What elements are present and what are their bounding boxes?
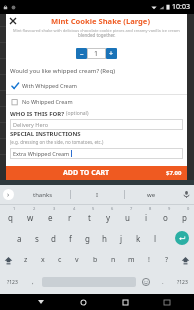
staticText: $7.00 xyxy=(166,169,182,177)
button[interactable]: ! xyxy=(140,249,158,271)
button[interactable]: Home xyxy=(76,295,90,309)
staticText: – xyxy=(80,49,84,59)
staticText: thanks xyxy=(33,191,53,199)
staticText: . xyxy=(162,278,164,286)
staticText: u xyxy=(125,212,130,223)
staticText: With Whipped Cream xyxy=(22,82,77,89)
staticText: 6 xyxy=(111,206,114,211)
button[interactable]: n xyxy=(104,249,122,271)
button[interactable]: x xyxy=(34,249,51,271)
button[interactable]: c xyxy=(51,249,68,271)
button[interactable]: d xyxy=(45,227,62,249)
button[interactable]: h xyxy=(96,227,113,249)
button[interactable]: 6 xyxy=(99,205,118,227)
button[interactable]: k xyxy=(130,227,147,249)
button[interactable]: l xyxy=(147,227,164,249)
button[interactable]: Voice input xyxy=(178,185,194,204)
staticText: Extra Whipped Cream xyxy=(13,150,70,157)
staticText: y xyxy=(106,212,111,223)
staticText: 4 xyxy=(73,206,76,211)
button[interactable]: More suggestions xyxy=(0,185,16,204)
staticText: r xyxy=(68,212,72,223)
staticText: Delivery Hero xyxy=(13,121,49,128)
button[interactable]: thanks xyxy=(16,185,70,204)
staticText: g xyxy=(85,233,90,244)
button[interactable]: z xyxy=(17,249,34,271)
button[interactable]: 0 xyxy=(175,205,194,227)
staticText: (e.g. dressing on the side, no tomatoes,… xyxy=(10,139,104,145)
staticText: Would you like whipped cream? (Req) xyxy=(10,67,115,75)
button[interactable]: ADD TO CART xyxy=(6,166,187,180)
staticText: › xyxy=(7,190,10,200)
staticText: ?123 xyxy=(177,279,188,286)
staticText: we xyxy=(147,191,156,199)
staticText: e xyxy=(48,212,53,223)
button[interactable]: j xyxy=(113,227,130,249)
staticText: c xyxy=(58,255,62,265)
staticText: v xyxy=(75,255,79,265)
button[interactable]: Extra Whipped Cream xyxy=(10,148,183,159)
button[interactable]: ?123 xyxy=(170,271,194,293)
staticText: x xyxy=(41,255,45,265)
button[interactable]: Switch keyboard xyxy=(160,295,174,309)
staticText: , xyxy=(32,278,34,286)
staticText: h xyxy=(102,233,107,244)
button[interactable]: Delivery Hero xyxy=(10,119,183,130)
button[interactable]: Backspace xyxy=(176,249,194,271)
staticText: 9 xyxy=(168,206,171,211)
staticText: m xyxy=(128,255,135,265)
button[interactable]: Close xyxy=(6,14,19,27)
staticText: 1 xyxy=(94,49,99,59)
staticText: a xyxy=(17,233,22,244)
button[interactable]: Recent apps xyxy=(118,295,132,309)
button[interactable]: b xyxy=(86,249,104,271)
button[interactable]: Decrease quantity xyxy=(76,48,87,59)
staticText: Mint flavoured shake with delicious choc… xyxy=(13,28,180,33)
staticText: l xyxy=(154,233,157,244)
button[interactable]: , xyxy=(24,271,42,293)
button[interactable]: ?123 xyxy=(0,271,24,293)
button[interactable]: 1 xyxy=(0,205,20,227)
button[interactable]: 7 xyxy=(118,205,137,227)
button[interactable]: a xyxy=(10,227,28,249)
button[interactable]: I xyxy=(71,185,124,204)
staticText: blended together. xyxy=(78,32,116,38)
staticText: 2 xyxy=(33,206,36,211)
staticText: ? xyxy=(165,255,169,265)
button[interactable]: 3 xyxy=(40,205,60,227)
staticText: (optional) xyxy=(66,110,89,117)
button[interactable]: Hide keyboard xyxy=(34,295,48,309)
button[interactable]: Enter xyxy=(170,227,194,249)
staticText: I xyxy=(96,191,99,199)
button[interactable]: Increase quantity xyxy=(106,48,117,59)
staticText: 0 xyxy=(187,206,190,211)
button[interactable]: f xyxy=(62,227,79,249)
button[interactable]: g xyxy=(79,227,96,249)
button[interactable]: 5 xyxy=(80,205,99,227)
button[interactable]: With Whipped Cream xyxy=(6,77,187,94)
staticText: k xyxy=(136,233,141,244)
button[interactable]: 9 xyxy=(156,205,175,227)
staticText: f xyxy=(69,233,72,244)
staticText: d xyxy=(51,233,56,244)
button[interactable]: s xyxy=(28,227,45,249)
button[interactable]: 4 xyxy=(60,205,80,227)
staticText: b xyxy=(93,255,98,265)
staticText: SPECIAL INSTRUCTIONS xyxy=(10,130,81,138)
button[interactable]: we xyxy=(125,185,178,204)
staticText: w xyxy=(27,212,34,223)
button[interactable]: ? xyxy=(158,249,176,271)
button[interactable]: 2 xyxy=(20,205,40,227)
button[interactable]: No Whipped Cream xyxy=(6,95,187,108)
button[interactable]: Shift xyxy=(0,249,17,271)
staticText: n xyxy=(111,255,116,265)
staticText: 5 xyxy=(92,206,95,211)
button[interactable]: v xyxy=(68,249,86,271)
button[interactable]: 8 xyxy=(137,205,156,227)
button[interactable]: m xyxy=(122,249,140,271)
button[interactable]: Emoji xyxy=(136,271,156,293)
staticText: i xyxy=(145,212,148,223)
staticText: p xyxy=(182,212,187,223)
